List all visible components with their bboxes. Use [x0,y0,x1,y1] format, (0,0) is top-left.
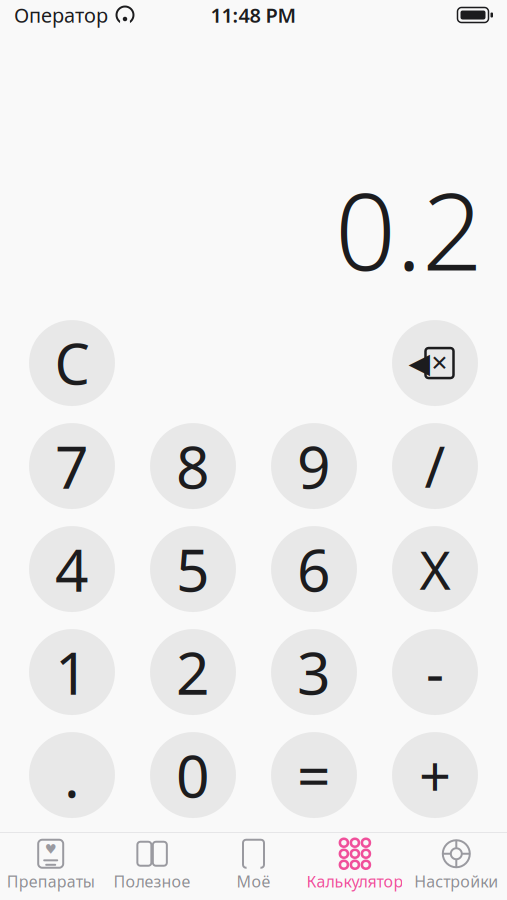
button[interactable]: 9 [271,423,357,509]
staticText: C [54,326,89,400]
staticText: = [297,736,331,814]
staticText: 9 [297,427,331,505]
staticText: 4 [55,530,89,608]
staticText: 6 [297,530,331,608]
button[interactable]: 0 [150,732,236,818]
staticText: 11:48 PM [210,2,296,28]
button[interactable]: 8 [150,423,236,509]
button[interactable]: X [392,526,478,612]
button[interactable]: 1 [29,629,115,715]
staticText: 8 [176,427,210,505]
staticText: - [426,635,444,709]
staticText: Настройки [414,871,498,892]
button[interactable]: Моё [203,833,304,900]
button[interactable]: Полезное [101,833,203,900]
staticText: . [64,736,80,814]
button[interactable]: Калькулятор [304,833,406,900]
button[interactable]: - [392,629,478,715]
button[interactable]: + [392,732,478,818]
staticText: 3 [297,633,331,711]
button[interactable]: = [271,732,357,818]
button[interactable]: Delete [392,320,478,406]
button[interactable]: 4 [29,526,115,612]
button[interactable]: 7 [29,423,115,509]
staticText: 0 [176,736,210,814]
staticText: Полезное [114,871,191,892]
staticText: Оператор [14,2,108,28]
staticText: + [419,738,451,812]
button[interactable]: 6 [271,526,357,612]
staticText: 0.2 [335,158,483,300]
button[interactable]: . [29,732,115,818]
button[interactable]: 5 [150,526,236,612]
staticText: 2 [176,633,210,711]
staticText: ♥ [45,842,57,857]
staticText: 5 [176,530,210,608]
button[interactable]: / [392,423,478,509]
staticText: 7 [55,427,89,505]
staticText: / [424,429,445,503]
staticText: 1 [55,633,89,711]
staticText: Препараты [7,871,95,892]
button[interactable]: 2 [150,629,236,715]
button[interactable]: Настройки [406,833,507,900]
button[interactable]: C [29,320,115,406]
staticText: X [419,534,450,604]
staticText: ◀ [408,347,430,379]
button[interactable]: 3 [271,629,357,715]
staticText: Калькулятор [306,871,403,892]
button[interactable]: ♥ [0,833,101,900]
staticText: Моё [236,871,270,892]
staticText: ✕ [430,351,448,375]
